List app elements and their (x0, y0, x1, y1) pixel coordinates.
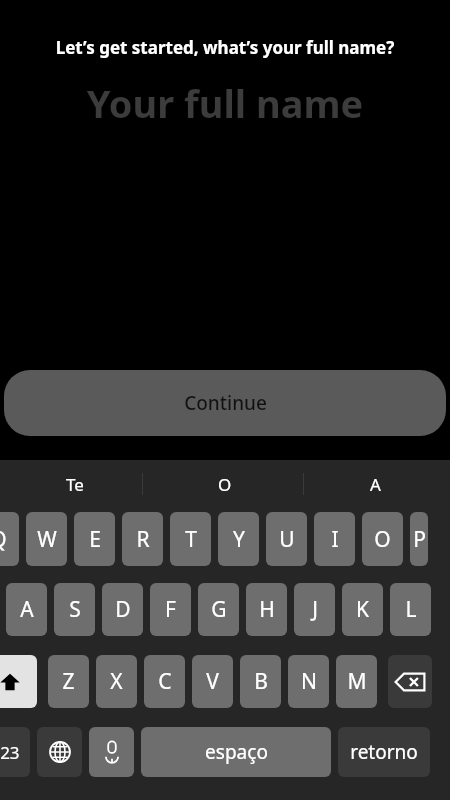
button[interactable]: P (410, 512, 428, 566)
button[interactable]: Shift (0, 655, 37, 708)
staticText: B (254, 667, 268, 696)
staticText: U (279, 525, 295, 554)
button[interactable]: O (362, 512, 403, 566)
button[interactable]: O (150, 460, 300, 508)
button[interactable]: Continue (4, 370, 446, 436)
button[interactable]: J (294, 583, 335, 636)
staticText: T (185, 525, 197, 554)
staticText: Let’s get started, what’s your full name… (10, 36, 440, 59)
button[interactable]: retorno (338, 727, 430, 777)
button[interactable]: Q (0, 512, 19, 566)
button[interactable]: B (240, 655, 281, 708)
staticText: Z (62, 667, 75, 696)
staticText: G (211, 595, 227, 624)
staticText: Q (0, 525, 7, 554)
staticText: M (347, 667, 367, 696)
staticText: O (218, 473, 232, 496)
button[interactable]: D (102, 583, 143, 636)
button[interactable]: V (192, 655, 233, 708)
staticText: espaço (205, 739, 268, 765)
button[interactable]: Z (48, 655, 89, 708)
button[interactable]: U (266, 512, 307, 566)
button[interactable]: S (54, 583, 95, 636)
staticText: P (413, 525, 426, 554)
staticText: D (115, 595, 131, 624)
button[interactable]: 123 (0, 727, 30, 777)
staticText: W (37, 525, 57, 554)
button[interactable]: C (144, 655, 185, 708)
button[interactable]: X (96, 655, 137, 708)
button[interactable]: Backspace (388, 655, 432, 708)
staticText: N (301, 667, 317, 696)
staticText: S (69, 595, 81, 624)
staticText: O (374, 525, 391, 554)
staticText: Continue (184, 390, 267, 416)
button[interactable]: L (390, 583, 431, 636)
button[interactable]: Te (0, 460, 150, 508)
button[interactable]: F (150, 583, 191, 636)
staticText: H (259, 595, 275, 624)
button[interactable]: G (198, 583, 239, 636)
staticText: E (89, 525, 101, 554)
button[interactable]: H (246, 583, 287, 636)
button[interactable]: R (122, 512, 163, 566)
staticText: K (356, 595, 369, 624)
button[interactable]: Your full name (8, 77, 442, 129)
button[interactable]: A (6, 583, 47, 636)
button[interactable]: M (336, 655, 377, 708)
staticText: R (136, 525, 150, 554)
staticText: X (110, 667, 123, 696)
button[interactable]: Y (218, 512, 259, 566)
button[interactable]: Change keyboard language (37, 727, 82, 777)
staticText: retorno (350, 739, 418, 765)
staticText: C (158, 667, 172, 696)
staticText: A (370, 473, 381, 496)
staticText: L (405, 595, 417, 624)
staticText: J (312, 595, 318, 624)
button[interactable]: A (300, 460, 450, 508)
staticText: V (206, 667, 219, 696)
button[interactable]: K (342, 583, 383, 636)
button[interactable]: N (288, 655, 329, 708)
staticText: F (165, 595, 176, 624)
staticText: Y (233, 525, 245, 554)
button[interactable]: I (314, 512, 355, 566)
button[interactable]: espaço (141, 727, 331, 777)
staticText: 123 (0, 741, 20, 764)
button[interactable]: Voice input (89, 727, 134, 777)
button[interactable]: E (74, 512, 115, 566)
button[interactable]: W (26, 512, 67, 566)
button[interactable]: T (170, 512, 211, 566)
staticText: I (331, 525, 339, 554)
staticText: Te (66, 473, 84, 496)
staticText: A (20, 595, 34, 624)
